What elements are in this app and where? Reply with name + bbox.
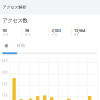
staticText: 時間	[17, 43, 25, 48]
button[interactable]: アクセス解析	[0, 0, 100, 14]
staticText: 90	[2, 28, 6, 33]
staticText: 200	[2, 82, 8, 86]
staticText: アクセス解析	[2, 5, 26, 10]
staticText: 今月	[51, 33, 57, 36]
staticText: 300	[2, 71, 8, 74]
staticText: 100	[2, 94, 8, 97]
staticText: 今日	[2, 33, 8, 36]
staticText: 3,923	[51, 28, 60, 33]
staticText: 13,564	[74, 28, 85, 33]
staticText: 累計	[74, 33, 80, 36]
staticText: アクセス数	[2, 17, 27, 24]
button[interactable]: 時間	[5, 43, 35, 48]
staticText: 昨日	[25, 33, 31, 36]
staticText: 400	[2, 59, 8, 63]
staticText: 98	[25, 28, 29, 33]
